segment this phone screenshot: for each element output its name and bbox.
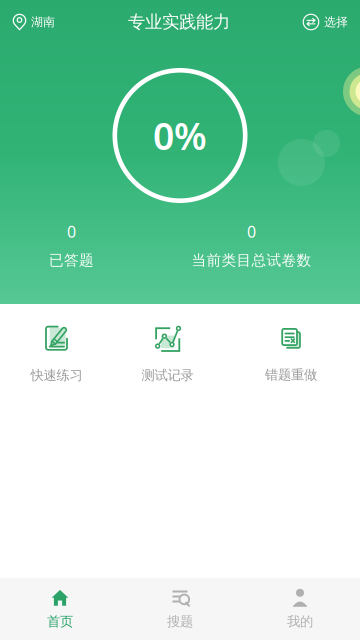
staticText: 测试记录 [141, 367, 193, 383]
staticText: 湖南 [31, 15, 55, 29]
button[interactable]: 快速练习 [0, 323, 113, 385]
button[interactable]: 湖南 [0, 0, 63, 44]
button[interactable]: 测试记录 [113, 323, 222, 385]
staticText: 错题重做 [265, 366, 317, 383]
staticText: 已答题 [49, 251, 94, 269]
staticText: 0 [247, 221, 256, 242]
button[interactable]: 搜题 [120, 578, 240, 640]
button[interactable]: 错题重做 [222, 323, 360, 385]
staticText: 首页 [47, 613, 73, 630]
staticText: 选择 [324, 15, 348, 29]
staticText: 0 [67, 221, 76, 242]
staticText: 我的 [287, 613, 313, 630]
staticText: 快速练习 [30, 367, 82, 383]
button[interactable]: 选择 [295, 0, 360, 44]
staticText: 专业实践能力 [128, 11, 230, 33]
staticText: 0% [153, 111, 207, 160]
staticText: 搜题 [167, 613, 193, 630]
button[interactable]: 我的 [240, 578, 360, 640]
button[interactable]: 首页 [0, 578, 120, 640]
staticText: 当前类目总试卷数 [191, 251, 311, 269]
